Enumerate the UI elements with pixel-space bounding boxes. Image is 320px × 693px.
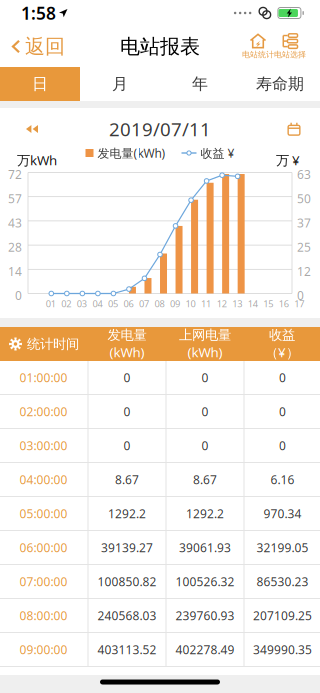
button[interactable]: 寿命期 — [240, 67, 320, 101]
staticText: 14 — [248, 297, 258, 310]
staticText: 50 — [297, 191, 311, 207]
staticText: 14 — [8, 263, 22, 279]
staticText: 100526.32 — [175, 573, 234, 589]
staticText: 0 — [201, 437, 208, 453]
button[interactable]: 返回 — [0, 26, 73, 67]
staticText: 03:00:00 — [19, 437, 67, 453]
staticText: 07 — [139, 297, 149, 310]
staticText: 0 — [201, 369, 208, 385]
staticText: 207109.25 — [253, 607, 312, 623]
staticText: 发电量(kWh) — [97, 145, 165, 161]
staticText: 07:00:00 — [19, 573, 67, 589]
staticText: 06 — [123, 297, 133, 310]
staticText: 12 — [217, 297, 227, 310]
staticText: 上网电量 — [179, 327, 231, 343]
staticText: 09:00:00 — [19, 641, 67, 657]
staticText: 03 — [77, 297, 87, 310]
staticText: 72 — [8, 166, 22, 182]
staticText: 返回 — [25, 34, 65, 59]
staticText: 08:00:00 — [19, 607, 67, 623]
staticText: 2019/07/11 — [109, 117, 211, 141]
staticText: 05:00:00 — [19, 505, 67, 521]
button[interactable]: 月 — [80, 67, 160, 101]
staticText: 17 — [294, 297, 304, 310]
staticText: 0 — [123, 403, 130, 419]
staticText: 16 — [279, 297, 289, 310]
staticText: 28 — [8, 239, 22, 255]
staticText: 02:00:00 — [19, 403, 67, 419]
button[interactable]: 上一天 — [0, 112, 64, 146]
staticText: 电站选择 — [274, 50, 306, 59]
staticText: 电站报表 — [120, 34, 200, 59]
staticText: 32199.05 — [256, 539, 308, 555]
staticText: 240568.03 — [97, 607, 156, 623]
staticText: 0 — [297, 287, 304, 303]
button[interactable]: 年 — [160, 67, 240, 101]
staticText: 349990.35 — [253, 641, 312, 657]
staticText: 05 — [108, 297, 118, 310]
staticText: 0 — [123, 437, 130, 453]
staticText: 01:00:00 — [19, 369, 67, 385]
staticText: 43 — [8, 215, 22, 231]
staticText: 100850.82 — [97, 573, 156, 589]
staticText: 402278.49 — [175, 641, 234, 657]
staticText: 37 — [297, 215, 311, 231]
staticText: 0 — [279, 437, 286, 453]
staticText: 寿命期 — [256, 74, 304, 94]
staticText: 6.16 — [270, 471, 294, 487]
staticText: 11 — [201, 297, 211, 310]
button[interactable]: 电站统计 — [242, 26, 274, 67]
staticText: 年 — [192, 74, 208, 94]
staticText: 08 — [154, 297, 164, 310]
staticText: 收益 — [269, 327, 295, 343]
staticText: 04 — [92, 297, 102, 310]
staticText: 86530.23 — [256, 573, 308, 589]
staticText: 15 — [263, 297, 273, 310]
staticText: 403113.52 — [97, 641, 156, 657]
staticText: 8.67 — [115, 471, 139, 487]
staticText: 月 — [112, 74, 128, 94]
staticText: 57 — [8, 191, 22, 207]
staticText: 13 — [232, 297, 242, 310]
staticText: 万kWh — [17, 151, 57, 169]
staticText: 10 — [186, 297, 196, 310]
staticText: 8.67 — [193, 471, 217, 487]
staticText: 0 — [279, 403, 286, 419]
staticText: 0 — [279, 369, 286, 385]
staticText: 统计时间 — [27, 336, 79, 352]
button[interactable]: 选择日期 — [268, 112, 320, 146]
staticText: 万 ¥ — [276, 151, 300, 169]
staticText: 39061.93 — [179, 539, 231, 555]
staticText: 1292.2 — [108, 505, 146, 521]
staticText: (kWh) — [109, 343, 144, 361]
staticText: 09 — [170, 297, 180, 310]
staticText: 06:00:00 — [19, 539, 67, 555]
staticText: 1292.2 — [186, 505, 224, 521]
staticText: (kWh) — [187, 343, 222, 361]
button[interactable]: 电站选择 — [274, 26, 306, 67]
staticText: 0 — [15, 287, 22, 303]
staticText: 01 — [46, 297, 56, 310]
staticText: 970.34 — [263, 505, 301, 521]
staticText: 12 — [297, 263, 311, 279]
staticText: 63 — [297, 166, 311, 182]
button[interactable]: 日 — [0, 67, 80, 101]
staticText: 02 — [61, 297, 71, 310]
staticText: 收益 ¥ — [200, 145, 234, 161]
staticText: 239760.93 — [175, 607, 234, 623]
staticText: 电站统计 — [242, 50, 274, 59]
staticText: （¥） — [265, 343, 299, 361]
staticText: 04:00:00 — [19, 471, 67, 487]
staticText: 日 — [32, 74, 48, 94]
staticText: 0 — [201, 403, 208, 419]
staticText: 0 — [123, 369, 130, 385]
staticText: 39139.27 — [101, 539, 153, 555]
staticText: 1:58 — [21, 1, 56, 24]
staticText: 25 — [297, 239, 311, 255]
staticText: 发电量 — [107, 327, 146, 343]
